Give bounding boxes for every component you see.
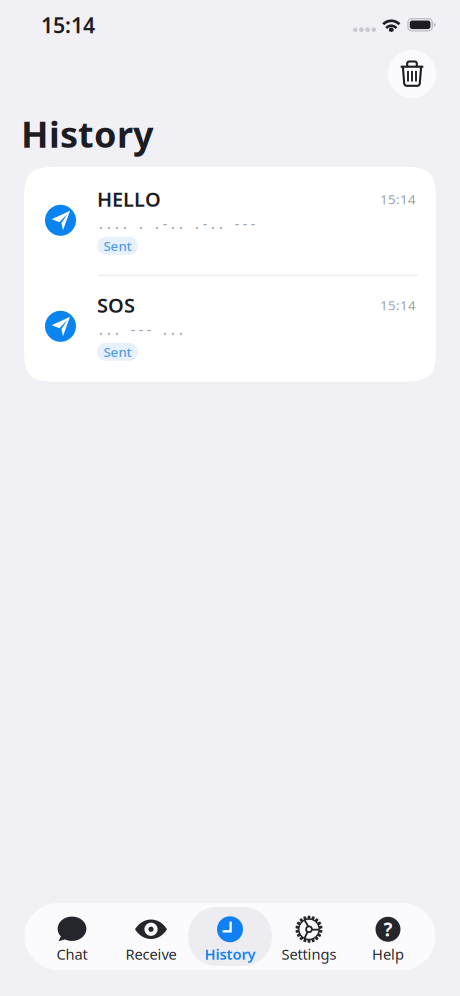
staticText: Receive <box>125 944 176 964</box>
button[interactable]: History <box>190 907 269 966</box>
staticText: Sent <box>103 343 131 361</box>
button[interactable]: Receive <box>111 907 190 966</box>
staticText: .... . .-.. .-.. --- <box>97 217 257 232</box>
staticText: ? <box>383 917 392 942</box>
staticText: HELLO <box>97 186 161 212</box>
staticText: History <box>21 110 154 158</box>
staticText: 15:14 <box>380 296 416 314</box>
staticText: Sent <box>103 237 131 255</box>
staticText: SOS <box>97 292 135 318</box>
staticText: ... --- ... <box>97 323 185 338</box>
button[interactable]: ? <box>348 907 427 966</box>
staticText: Help <box>372 944 404 964</box>
staticText: 15:14 <box>41 11 95 39</box>
staticText: History <box>204 944 255 964</box>
button[interactable]: Chat <box>32 907 111 966</box>
button[interactable]: Clear history <box>388 50 436 98</box>
staticText: Settings <box>281 944 336 964</box>
staticText: 15:14 <box>380 190 416 208</box>
staticText: Chat <box>56 944 87 964</box>
button[interactable]: Settings <box>269 907 348 966</box>
